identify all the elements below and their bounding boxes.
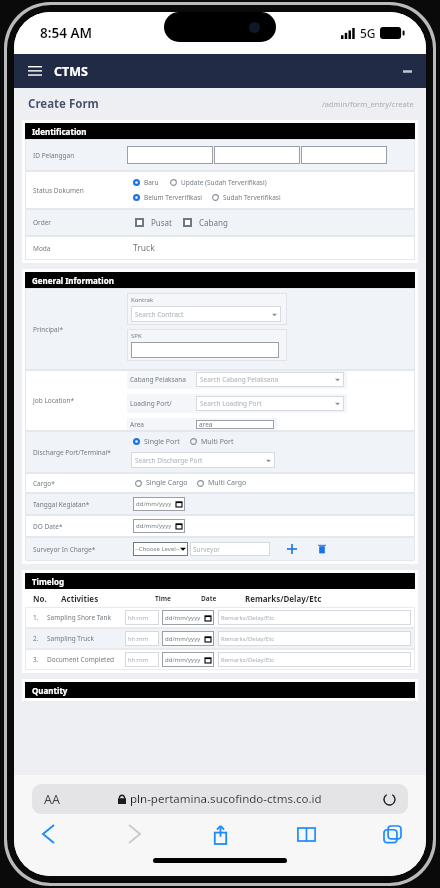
staticText: Quantity: [32, 685, 68, 696]
staticText: /admin/form_entry/create: [322, 99, 414, 109]
button[interactable]: Reload: [380, 790, 398, 808]
staticText: ID Pelanggan: [33, 151, 75, 160]
staticText: Baru: [144, 178, 159, 187]
staticText: Pusat: [151, 217, 172, 228]
staticText: Surveyor In Charge*: [33, 545, 96, 554]
staticText: hh:mm: [128, 614, 149, 622]
button[interactable]: [131, 192, 142, 203]
button[interactable]: [188, 436, 199, 447]
staticText: dd/mm/yyyy: [165, 656, 201, 664]
staticText: Principal*: [33, 325, 64, 334]
staticText: Search Cabang Pelaksana: [200, 375, 279, 384]
staticText: Remarks/Delay/Etc: [245, 593, 322, 604]
staticText: Surveyor: [193, 545, 221, 554]
button[interactable]: AA: [32, 784, 408, 814]
button[interactable]: Back: [28, 814, 68, 854]
button[interactable]: Tabs: [372, 814, 412, 854]
staticText: Identification: [32, 126, 87, 137]
staticText: Discharge Port/Terminal*: [33, 448, 111, 457]
staticText: Cabang Pelaksana: [130, 375, 186, 384]
staticText: 1.: [33, 613, 47, 622]
button[interactable]: --Choose Level--: [133, 542, 188, 556]
staticText: Search Contract: [135, 310, 184, 319]
staticText: AA: [44, 791, 60, 808]
staticText: 3.: [33, 655, 47, 664]
staticText: No.: [33, 593, 47, 604]
button[interactable]: [131, 177, 142, 188]
staticText: 8:54 AM: [40, 24, 93, 42]
button[interactable]: [131, 436, 142, 447]
staticText: Truck: [133, 242, 155, 254]
staticText: Belum Terverifikasi: [144, 193, 203, 202]
staticText: --Choose Level--: [135, 545, 180, 553]
button[interactable]: [181, 216, 194, 229]
button[interactable]: [195, 478, 206, 489]
button[interactable]: Account: [398, 62, 416, 80]
button[interactable]: [301, 146, 387, 164]
staticText: Remarks/Delay/Etc: [221, 656, 275, 664]
button[interactable]: Add surveyor: [284, 541, 300, 557]
staticText: CTMS: [54, 63, 88, 80]
staticText: 2.: [33, 634, 47, 643]
button[interactable]: Menu: [24, 60, 46, 82]
button[interactable]: dd/mm/yyyy: [162, 610, 214, 625]
staticText: Update (Sudah Terverifikasi): [181, 178, 267, 187]
staticText: Order: [33, 218, 51, 227]
staticText: Timelog: [32, 576, 65, 587]
staticText: Tanggal Kegiatan*: [33, 500, 90, 509]
staticText: Status Dokumen: [33, 186, 84, 195]
button[interactable]: dd/mm/yyyy: [162, 631, 214, 646]
staticText: Document Completed: [47, 655, 125, 664]
staticText: hh:mm: [128, 635, 149, 643]
staticText: Search Loading Port: [200, 399, 262, 408]
button[interactable]: Search Contract: [131, 306, 281, 322]
button[interactable]: Bookmarks: [286, 814, 326, 854]
button[interactable]: Forward: [114, 814, 154, 854]
staticText: dd/mm/yyyy: [165, 614, 201, 622]
staticText: dd/mm/yyyy: [136, 500, 172, 508]
staticText: Remarks/Delay/Etc: [221, 635, 275, 643]
staticText: Sampling Truck: [47, 634, 125, 643]
staticText: Sampling Shore Tank: [47, 613, 125, 622]
button[interactable]: [168, 177, 179, 188]
staticText: Kontrak: [131, 296, 154, 304]
staticText: pln-pertamina.sucofindo-ctms.co.id: [130, 791, 322, 807]
staticText: hh:mm: [128, 656, 149, 664]
staticText: Multi Cargo: [208, 478, 247, 488]
button[interactable]: dd/mm/yyyy: [133, 497, 185, 511]
staticText: Single Cargo: [146, 478, 188, 488]
staticText: area: [199, 420, 213, 429]
staticText: Activities: [61, 593, 99, 604]
staticText: Sudah Terverifikasi: [223, 193, 281, 202]
staticText: Cabang: [199, 217, 228, 228]
staticText: DO Date*: [33, 522, 63, 531]
staticText: Create Form: [28, 96, 99, 112]
button[interactable]: dd/mm/yyyy: [162, 652, 214, 667]
staticText: Multi Port: [201, 437, 234, 447]
staticText: dd/mm/yyyy: [136, 522, 172, 530]
button[interactable]: [210, 192, 221, 203]
button[interactable]: [131, 342, 279, 358]
button[interactable]: Search Loading Port: [196, 396, 344, 411]
staticText: Date: [201, 594, 217, 603]
staticText: Area: [130, 420, 145, 429]
staticText: Single Port: [144, 437, 180, 447]
staticText: Moda: [33, 244, 51, 253]
button[interactable]: dd/mm/yyyy: [133, 519, 185, 533]
button[interactable]: Search Discharge Port: [131, 452, 275, 468]
staticText: SPK: [131, 332, 142, 340]
button[interactable]: Delete surveyor: [314, 541, 330, 557]
button[interactable]: [127, 146, 213, 164]
staticText: Loading Port/Terminal: [130, 399, 196, 408]
button[interactable]: Search Cabang Pelaksana: [196, 372, 344, 387]
button[interactable]: [133, 216, 146, 229]
staticText: 5G: [360, 25, 376, 41]
button[interactable]: [214, 146, 300, 164]
staticText: Search Discharge Port: [135, 456, 203, 465]
staticText: Cargo*: [33, 479, 55, 488]
staticText: General Information: [32, 275, 114, 286]
button[interactable]: [133, 478, 144, 489]
staticText: Job Location*: [33, 396, 75, 405]
button[interactable]: Share: [200, 814, 240, 854]
staticText: Remarks/Delay/Etc: [221, 614, 275, 622]
